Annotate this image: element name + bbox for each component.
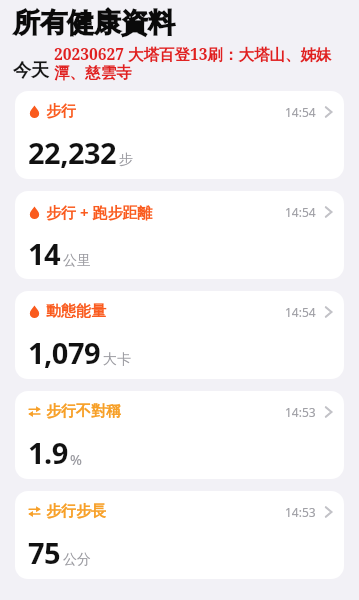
other: Show details <box>325 506 332 518</box>
other: Show details <box>325 106 332 118</box>
staticText: 14:54 <box>285 104 316 120</box>
staticText: 步行步長 <box>46 502 106 521</box>
staticText: 22,232 <box>28 133 117 172</box>
other: Show details <box>325 406 332 418</box>
staticText: 1,079 <box>28 333 101 372</box>
staticText: 今天 <box>13 59 49 82</box>
staticText: 步 <box>119 151 133 169</box>
button[interactable]: 步行 <box>15 91 344 179</box>
staticText: 14:53 <box>285 404 316 420</box>
staticText: 步行 <box>46 102 76 121</box>
staticText: 動態能量 <box>46 302 106 321</box>
staticText: 20230627 大塔百登13刷：大塔山、姊妹潭、慈雲寺 <box>54 43 351 83</box>
staticText: 步行不對稱 <box>46 402 121 421</box>
button[interactable]: 步行不對稱 <box>15 391 344 479</box>
staticText: 步行 + 跑步距離 <box>46 202 153 222</box>
staticText: 14:53 <box>285 504 316 520</box>
staticText: 公里 <box>63 252 91 270</box>
staticText: 公分 <box>63 551 91 569</box>
staticText: 14:54 <box>285 204 316 220</box>
staticText: 14:54 <box>285 304 316 320</box>
other: Show details <box>325 206 332 218</box>
staticText: 所有健康資料 <box>13 6 175 40</box>
staticText: 1.9 <box>28 433 68 472</box>
button[interactable]: 步行步長 <box>15 491 344 579</box>
staticText: 大卡 <box>103 351 131 369</box>
other: Show details <box>325 306 332 318</box>
button[interactable]: 步行 + 跑步距離 <box>15 191 344 279</box>
staticText: 75 <box>28 533 61 572</box>
staticText: 14 <box>28 234 61 273</box>
button[interactable]: 動態能量 <box>15 291 344 379</box>
staticText: % <box>70 450 82 469</box>
